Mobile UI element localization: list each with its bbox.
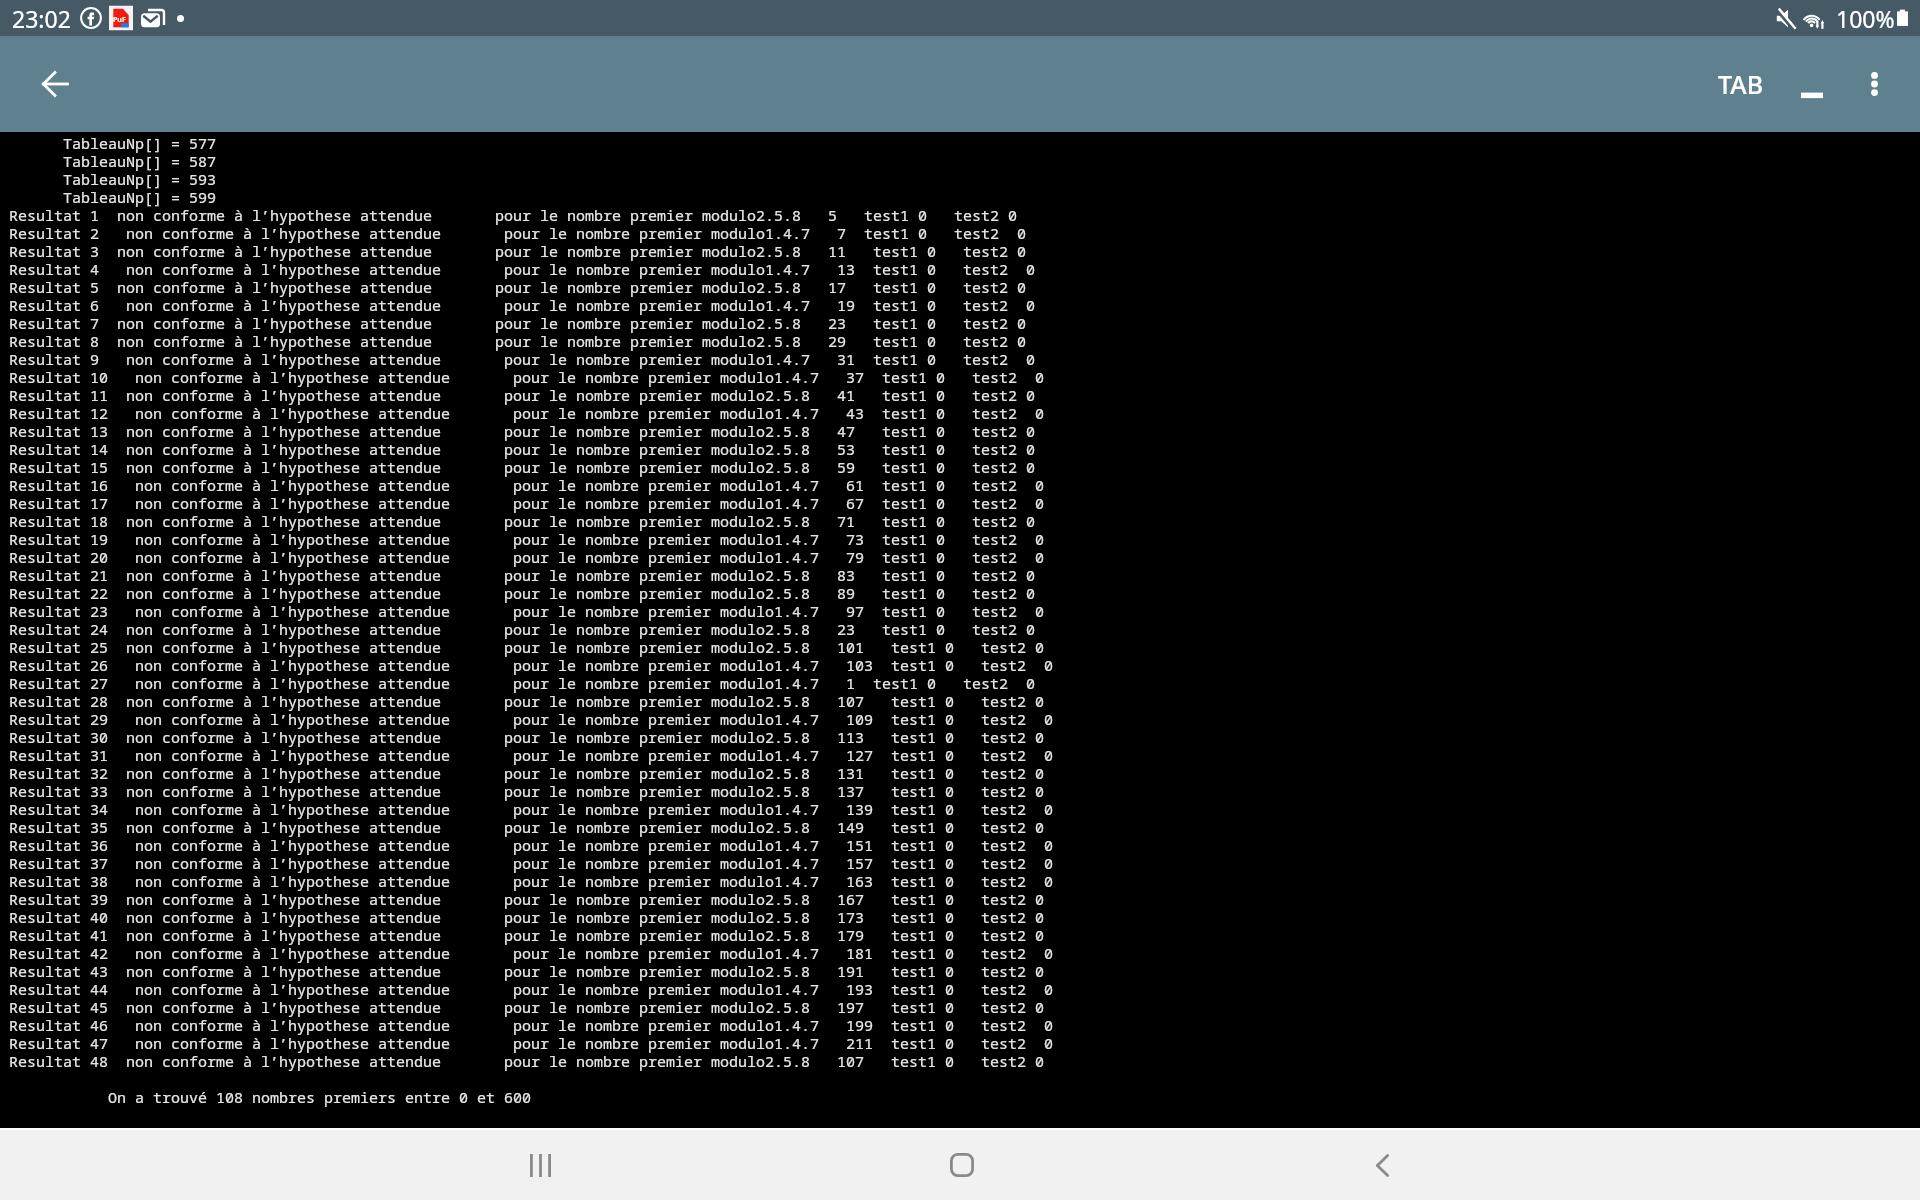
staticText: TableauNp[] = 599 [9,189,217,207]
staticText: Resultat 22 non conforme à l’hypothese a… [9,585,1036,603]
staticText: Resultat 19 non conforme à l’hypothese a… [9,531,1045,549]
staticText: TableauNp[] = 587 [9,153,217,171]
staticText: Resultat 32 non conforme à l’hypothese a… [9,765,1045,783]
button[interactable]: Back [19,48,91,120]
staticText: Resultat 38 non conforme à l’hypothese a… [9,873,1054,891]
staticText: Resultat 39 non conforme à l’hypothese a… [9,891,1045,909]
button[interactable]: Minimize [1784,55,1840,111]
button[interactable]: Home [926,1129,998,1200]
staticText: On a trouvé 108 nombres premiers entre 0… [9,1089,532,1107]
staticText: Resultat 21 non conforme à l’hypothese a… [9,567,1036,585]
staticText: Resultat 28 non conforme à l’hypothese a… [9,693,1045,711]
staticText: Resultat 45 non conforme à l’hypothese a… [9,999,1045,1017]
staticText: Resultat 24 non conforme à l’hypothese a… [9,621,1036,639]
staticText: PuF [113,15,126,25]
staticText: Resultat 40 non conforme à l’hypothese a… [9,909,1045,927]
staticText: Resultat 6 non conforme à l’hypothese at… [9,297,1036,315]
button[interactable]: More options [1846,56,1902,112]
staticText: Resultat 26 non conforme à l’hypothese a… [9,657,1054,675]
staticText: Resultat 8 non conforme à l’hypothese at… [9,333,1027,351]
staticText: Resultat 20 non conforme à l’hypothese a… [9,549,1045,567]
staticText: 100% [1836,3,1895,34]
staticText: Resultat 44 non conforme à l’hypothese a… [9,981,1054,999]
staticText: Resultat 17 non conforme à l’hypothese a… [9,495,1045,513]
staticText: Resultat 13 non conforme à l’hypothese a… [9,423,1036,441]
staticText: Resultat 15 non conforme à l’hypothese a… [9,459,1036,477]
button[interactable]: Back [1346,1129,1418,1200]
staticText: Resultat 4 non conforme à l’hypothese at… [9,261,1036,279]
staticText: Resultat 27 non conforme à l’hypothese a… [9,675,1036,693]
staticText: Resultat 5 non conforme à l’hypothese at… [9,279,1027,297]
staticText: 23:02 [12,3,71,34]
staticText: Resultat 14 non conforme à l’hypothese a… [9,441,1036,459]
staticText: Resultat 16 non conforme à l’hypothese a… [9,477,1045,495]
staticText: Resultat 23 non conforme à l’hypothese a… [9,603,1045,621]
staticText: Resultat 3 non conforme à l’hypothese at… [9,243,1027,261]
staticText: Resultat 36 non conforme à l’hypothese a… [9,837,1054,855]
staticText: TableauNp[] = 593 [9,171,217,189]
staticText: Resultat 33 non conforme à l’hypothese a… [9,783,1045,801]
staticText: Resultat 2 non conforme à l’hypothese at… [9,225,1027,243]
staticText: Resultat 12 non conforme à l’hypothese a… [9,405,1045,423]
staticText: Resultat 31 non conforme à l’hypothese a… [9,747,1054,765]
staticText: Resultat 29 non conforme à l’hypothese a… [9,711,1054,729]
staticText: Resultat 9 non conforme à l’hypothese at… [9,351,1036,369]
staticText: Resultat 37 non conforme à l’hypothese a… [9,855,1054,873]
staticText: Resultat 25 non conforme à l’hypothese a… [9,639,1045,657]
staticText: Resultat 46 non conforme à l’hypothese a… [9,1017,1054,1035]
staticText: Resultat 30 non conforme à l’hypothese a… [9,729,1045,747]
staticText: Resultat 34 non conforme à l’hypothese a… [9,801,1054,819]
staticText: TableauNp[] = 577 [9,135,217,153]
staticText: Resultat 7 non conforme à l’hypothese at… [9,315,1027,333]
staticText: Resultat 11 non conforme à l’hypothese a… [9,387,1036,405]
staticText: TAB [1718,67,1764,101]
staticText: Resultat 42 non conforme à l’hypothese a… [9,945,1054,963]
staticText: Resultat 18 non conforme à l’hypothese a… [9,513,1036,531]
staticText: Resultat 10 non conforme à l’hypothese a… [9,369,1045,387]
staticText: Resultat 48 non conforme à l’hypothese a… [9,1053,1045,1071]
staticText: Resultat 1 non conforme à l’hypothese at… [9,207,1018,225]
staticText: Resultat 35 non conforme à l’hypothese a… [9,819,1045,837]
button[interactable]: TAB [1692,48,1790,120]
staticText: Resultat 41 non conforme à l’hypothese a… [9,927,1045,945]
staticText: Resultat 43 non conforme à l’hypothese a… [9,963,1045,981]
button[interactable]: Recent apps [504,1129,576,1200]
staticText: Resultat 47 non conforme à l’hypothese a… [9,1035,1054,1053]
